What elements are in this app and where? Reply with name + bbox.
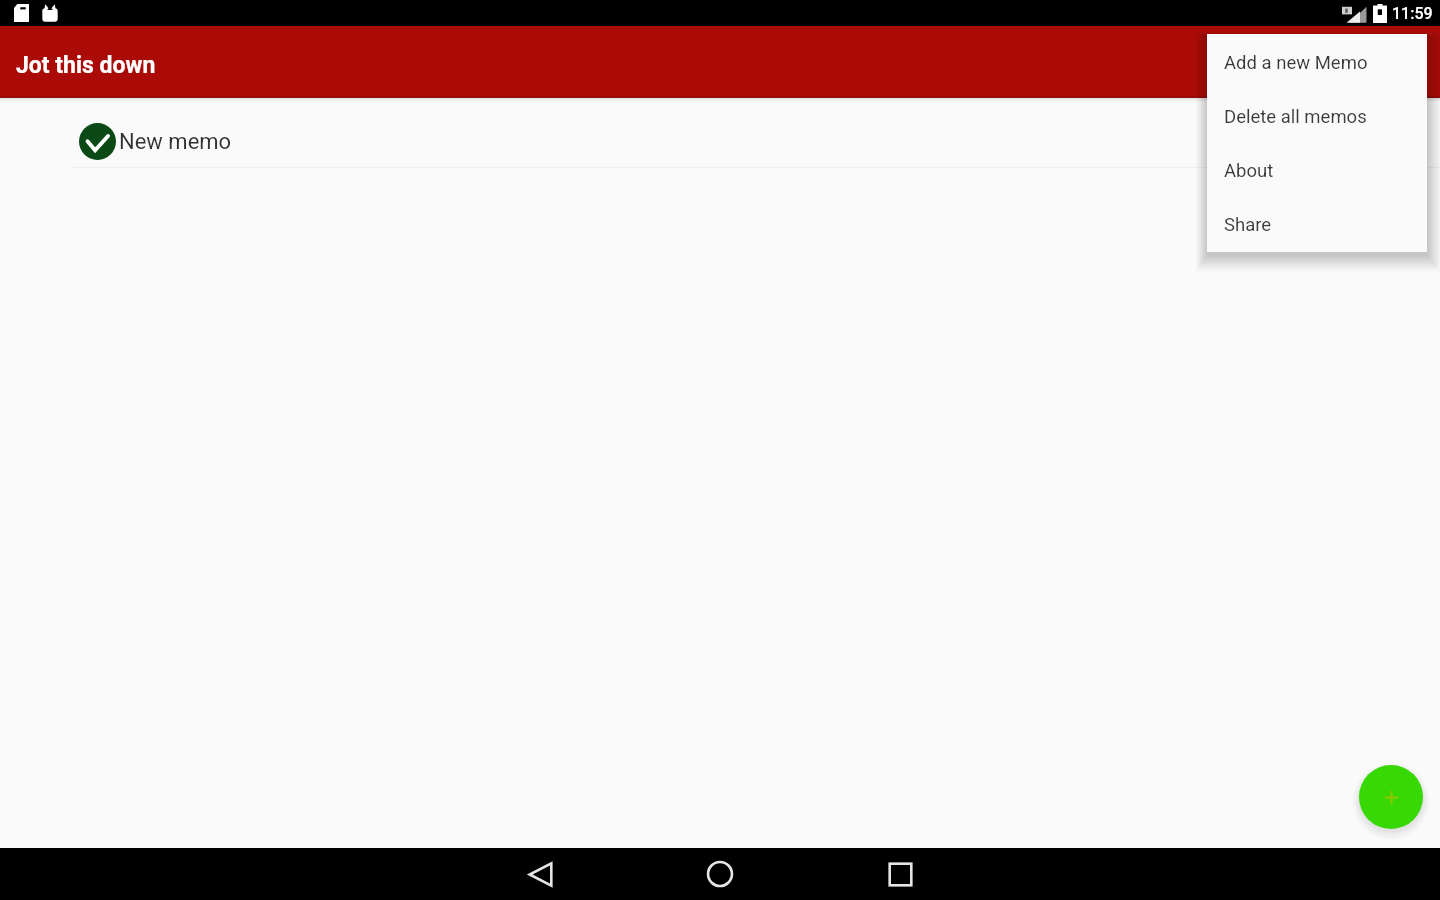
staticText: About (1224, 160, 1274, 182)
button[interactable]: Home (630, 848, 810, 900)
staticText: Add a new Memo (1224, 52, 1368, 74)
button[interactable]: About (1207, 142, 1427, 196)
staticText: Delete all memos (1224, 106, 1367, 128)
button[interactable]: Delete all memos (1207, 88, 1427, 142)
staticText: 11:59 (1392, 4, 1433, 23)
button[interactable]: Add memo (1359, 765, 1423, 829)
button[interactable]: Add a new Memo (1207, 34, 1427, 88)
button[interactable]: Recent apps (810, 848, 990, 900)
staticText: Jot this down (16, 52, 156, 79)
button[interactable]: New memo (0, 116, 1440, 168)
button[interactable]: Share (1207, 196, 1427, 250)
button[interactable]: Back (450, 848, 630, 900)
staticText: Share (1224, 214, 1272, 236)
staticText: New memo (119, 129, 232, 155)
